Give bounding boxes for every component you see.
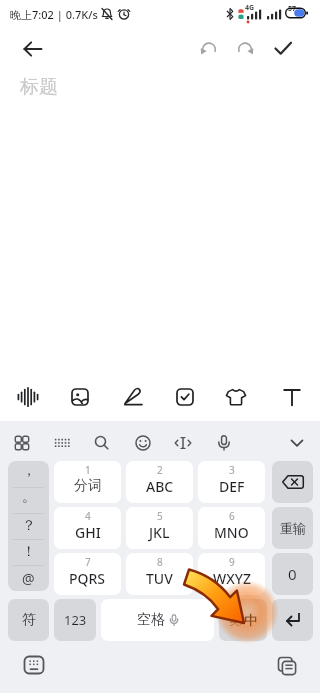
button[interactable] (272, 461, 313, 503)
button[interactable]: 9 (198, 553, 265, 595)
staticText: ABC (146, 477, 174, 496)
staticText: 0 (288, 564, 297, 584)
button[interactable]: 符 (8, 599, 49, 641)
staticText: 英/中 (229, 612, 258, 628)
staticText: 2 (157, 463, 163, 477)
staticText: @ (22, 569, 35, 588)
button[interactable]: 重输 (272, 507, 313, 549)
staticText: 57 (288, 4, 297, 14)
staticText: PQRS (69, 569, 106, 588)
button[interactable] (10, 431, 34, 455)
staticText: DEF (219, 477, 245, 496)
button[interactable] (131, 431, 155, 455)
staticText: 7 (85, 555, 91, 569)
staticText: ！ (22, 543, 36, 561)
button[interactable]: 5 (126, 507, 193, 549)
staticText: TUV (146, 569, 173, 588)
button[interactable]: 123 (54, 599, 96, 641)
button[interactable] (272, 599, 313, 641)
button[interactable] (171, 431, 195, 455)
button[interactable] (119, 384, 145, 410)
staticText: 晚上7:02 | 0.7K/s (10, 7, 98, 22)
staticText: 123 (64, 611, 87, 629)
staticText: 重输 (280, 520, 306, 536)
staticText: JKL (149, 523, 170, 542)
staticText: ？ (22, 517, 36, 535)
staticText: 。 (22, 488, 36, 506)
button[interactable]: ， (8, 461, 49, 591)
button[interactable] (22, 653, 46, 677)
staticText: 9 (229, 555, 235, 569)
button[interactable]: 6 (198, 507, 265, 549)
staticText: 4G (245, 3, 255, 13)
button[interactable] (275, 654, 299, 678)
button[interactable] (223, 384, 249, 410)
button[interactable] (90, 431, 114, 455)
button[interactable] (20, 36, 46, 62)
button[interactable] (279, 384, 305, 410)
button[interactable] (212, 431, 236, 455)
staticText: ， (22, 462, 36, 480)
button[interactable] (285, 431, 309, 455)
button[interactable]: 7 (54, 553, 121, 595)
button[interactable]: 8 (126, 553, 193, 595)
staticText: 空格 (137, 611, 165, 629)
button[interactable] (15, 384, 41, 410)
button[interactable] (196, 36, 222, 62)
button[interactable] (50, 431, 74, 455)
button[interactable]: 4 (54, 507, 121, 549)
staticText: 6 (229, 509, 235, 523)
button[interactable] (232, 36, 258, 62)
staticText: 1 (85, 463, 91, 477)
button[interactable]: 0 (272, 553, 313, 595)
staticText: 3 (229, 463, 235, 477)
button[interactable] (172, 384, 198, 410)
button[interactable]: 2 (126, 461, 193, 503)
staticText: 符 (22, 611, 36, 629)
button[interactable]: 3 (198, 461, 265, 503)
staticText: 分词 (74, 477, 102, 495)
button[interactable] (67, 384, 93, 410)
button[interactable]: 英/中 (219, 599, 267, 641)
staticText: 5 (157, 509, 163, 523)
staticText: 8 (157, 555, 163, 569)
staticText: MNO (214, 523, 249, 542)
staticText: WXYZ (213, 569, 251, 588)
staticText: 4 (85, 509, 91, 523)
staticText: 标题 (20, 75, 58, 99)
button[interactable] (270, 35, 296, 61)
button[interactable]: 空格 (101, 599, 214, 641)
button[interactable]: 1 (54, 461, 121, 503)
staticText: GHI (75, 523, 101, 542)
